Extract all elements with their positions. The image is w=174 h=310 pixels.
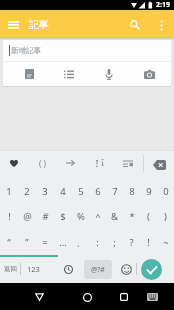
staticText: 8 — [129, 185, 135, 198]
staticText: ( — [147, 210, 150, 223]
button[interactable]: … — [54, 228, 72, 255]
button[interactable]: 3 — [36, 176, 54, 202]
staticText: @?# — [91, 265, 105, 275]
button[interactable]: “ — [0, 228, 18, 255]
button[interactable]: ( — [140, 202, 157, 228]
staticText: ” — [25, 236, 29, 249]
staticText: 5 — [78, 185, 84, 198]
staticText: 記事 — [29, 18, 49, 31]
button[interactable] — [28, 286, 50, 308]
button[interactable]: & — [106, 202, 123, 228]
button[interactable]: @ — [18, 202, 36, 228]
staticText: 、 — [76, 237, 86, 249]
button[interactable]: ) — [157, 202, 174, 228]
button[interactable] — [142, 287, 162, 307]
staticText: … — [59, 236, 67, 249]
button[interactable]: 7 — [106, 176, 123, 202]
button[interactable]: 5 — [72, 176, 89, 202]
button[interactable] — [89, 62, 129, 86]
button[interactable]: 、 — [72, 228, 89, 255]
button[interactable]: ^ — [89, 202, 106, 228]
button[interactable]: 8 — [123, 176, 140, 202]
staticText: 3 — [42, 185, 48, 198]
staticText: ? — [129, 236, 134, 249]
staticText: 新增記事 — [11, 46, 41, 55]
button[interactable] — [144, 150, 174, 176]
button[interactable]: : — [89, 228, 106, 255]
button[interactable]: * — [123, 202, 140, 228]
button[interactable]: ? — [123, 228, 140, 255]
button[interactable]: ! — [140, 228, 157, 255]
button[interactable] — [85, 150, 114, 176]
button[interactable]: 6 — [89, 176, 106, 202]
button[interactable] — [120, 258, 132, 280]
button[interactable] — [56, 150, 85, 176]
staticText: ! — [8, 210, 11, 223]
button[interactable]: 1 — [0, 176, 18, 202]
staticText: = — [42, 236, 48, 249]
staticText: 2 — [24, 185, 30, 198]
button[interactable] — [152, 16, 170, 34]
button[interactable] — [76, 286, 98, 308]
staticText: % — [77, 210, 85, 223]
staticText: & — [111, 210, 118, 223]
staticText: ! — [147, 236, 150, 249]
button[interactable] — [0, 12, 26, 37]
button[interactable]: ~ — [157, 228, 174, 255]
button[interactable]: ; — [106, 228, 123, 255]
button[interactable] — [9, 62, 49, 86]
staticText: * — [129, 210, 135, 223]
button[interactable]: 9 — [140, 176, 157, 202]
staticText: ^ — [95, 210, 101, 223]
button[interactable]: 2 — [18, 176, 36, 202]
button[interactable] — [56, 255, 80, 283]
button[interactable]: @?# — [84, 260, 112, 279]
staticText: $ — [60, 210, 66, 223]
button[interactable]: 0 — [157, 176, 174, 202]
button[interactable] — [0, 150, 28, 176]
staticText: 123 — [27, 264, 40, 274]
button[interactable]: 4 — [54, 176, 72, 202]
staticText: 6 — [95, 185, 101, 198]
staticText: 4 — [60, 185, 66, 198]
staticText: # — [42, 210, 49, 223]
button[interactable]: = — [36, 228, 54, 255]
button[interactable]: 新增記事 — [3, 40, 171, 86]
button[interactable] — [114, 150, 142, 176]
staticText: 7 — [112, 185, 118, 198]
staticText: @ — [23, 210, 32, 223]
staticText: ~ — [163, 236, 169, 249]
staticText: ( ) — [39, 158, 46, 169]
staticText: ; — [113, 236, 116, 249]
button[interactable]: 返回 — [0, 255, 20, 283]
button[interactable] — [124, 14, 146, 36]
staticText: ) — [164, 210, 167, 223]
staticText: “ — [7, 236, 11, 249]
staticText: 9 — [146, 185, 152, 198]
staticText: 0 — [163, 185, 169, 198]
button[interactable]: 123 — [21, 255, 46, 283]
button[interactable]: # — [36, 202, 54, 228]
button[interactable] — [129, 62, 169, 86]
button[interactable]: $ — [54, 202, 72, 228]
staticText: 1 — [6, 185, 12, 198]
staticText: 2:19 — [156, 0, 170, 10]
staticText: 返回 — [4, 265, 17, 273]
button[interactable] — [49, 62, 89, 86]
button[interactable] — [141, 259, 162, 280]
button[interactable]: ! — [0, 202, 18, 228]
staticText: : — [96, 236, 99, 249]
button[interactable]: % — [72, 202, 89, 228]
button[interactable] — [113, 286, 135, 308]
button[interactable]: ( ) — [28, 150, 56, 176]
button[interactable]: ” — [18, 228, 36, 255]
